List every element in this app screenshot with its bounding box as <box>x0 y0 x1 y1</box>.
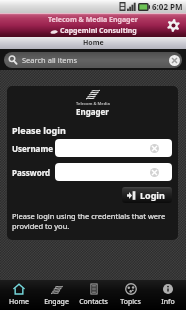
button[interactable]: Clear search <box>169 55 180 66</box>
button[interactable] <box>55 163 172 181</box>
staticText: Contacts <box>79 297 108 307</box>
staticText: Username <box>12 143 55 154</box>
button[interactable]: Settings <box>165 17 182 34</box>
staticText: Login <box>140 189 165 201</box>
staticText: Home <box>83 38 104 48</box>
button[interactable]: Contacts <box>75 280 112 310</box>
staticText: Telecom & Media <box>76 101 110 106</box>
staticText: Please login <box>12 124 66 136</box>
staticText: Capgemini Consulting <box>60 26 137 36</box>
button[interactable]: Engage <box>38 280 75 310</box>
staticText: Password <box>12 167 55 178</box>
button[interactable]: Search all items <box>4 52 182 68</box>
button[interactable]: Info <box>149 280 186 310</box>
staticText: 6:02 PM <box>152 1 183 12</box>
button[interactable]: Home <box>0 280 38 310</box>
staticText: Engage <box>44 297 69 307</box>
staticText: Engager <box>76 106 109 117</box>
button[interactable]: Login <box>122 187 172 203</box>
staticText: Topics <box>120 297 141 307</box>
staticText: Info <box>161 297 175 307</box>
staticText: Search all items <box>22 55 78 65</box>
button[interactable]: Topics <box>112 280 149 310</box>
staticText: Home <box>9 297 29 307</box>
staticText: Telecom & Media Engager <box>48 15 138 25</box>
button[interactable] <box>55 139 172 157</box>
staticText: Please login using the credentials that … <box>12 211 170 231</box>
